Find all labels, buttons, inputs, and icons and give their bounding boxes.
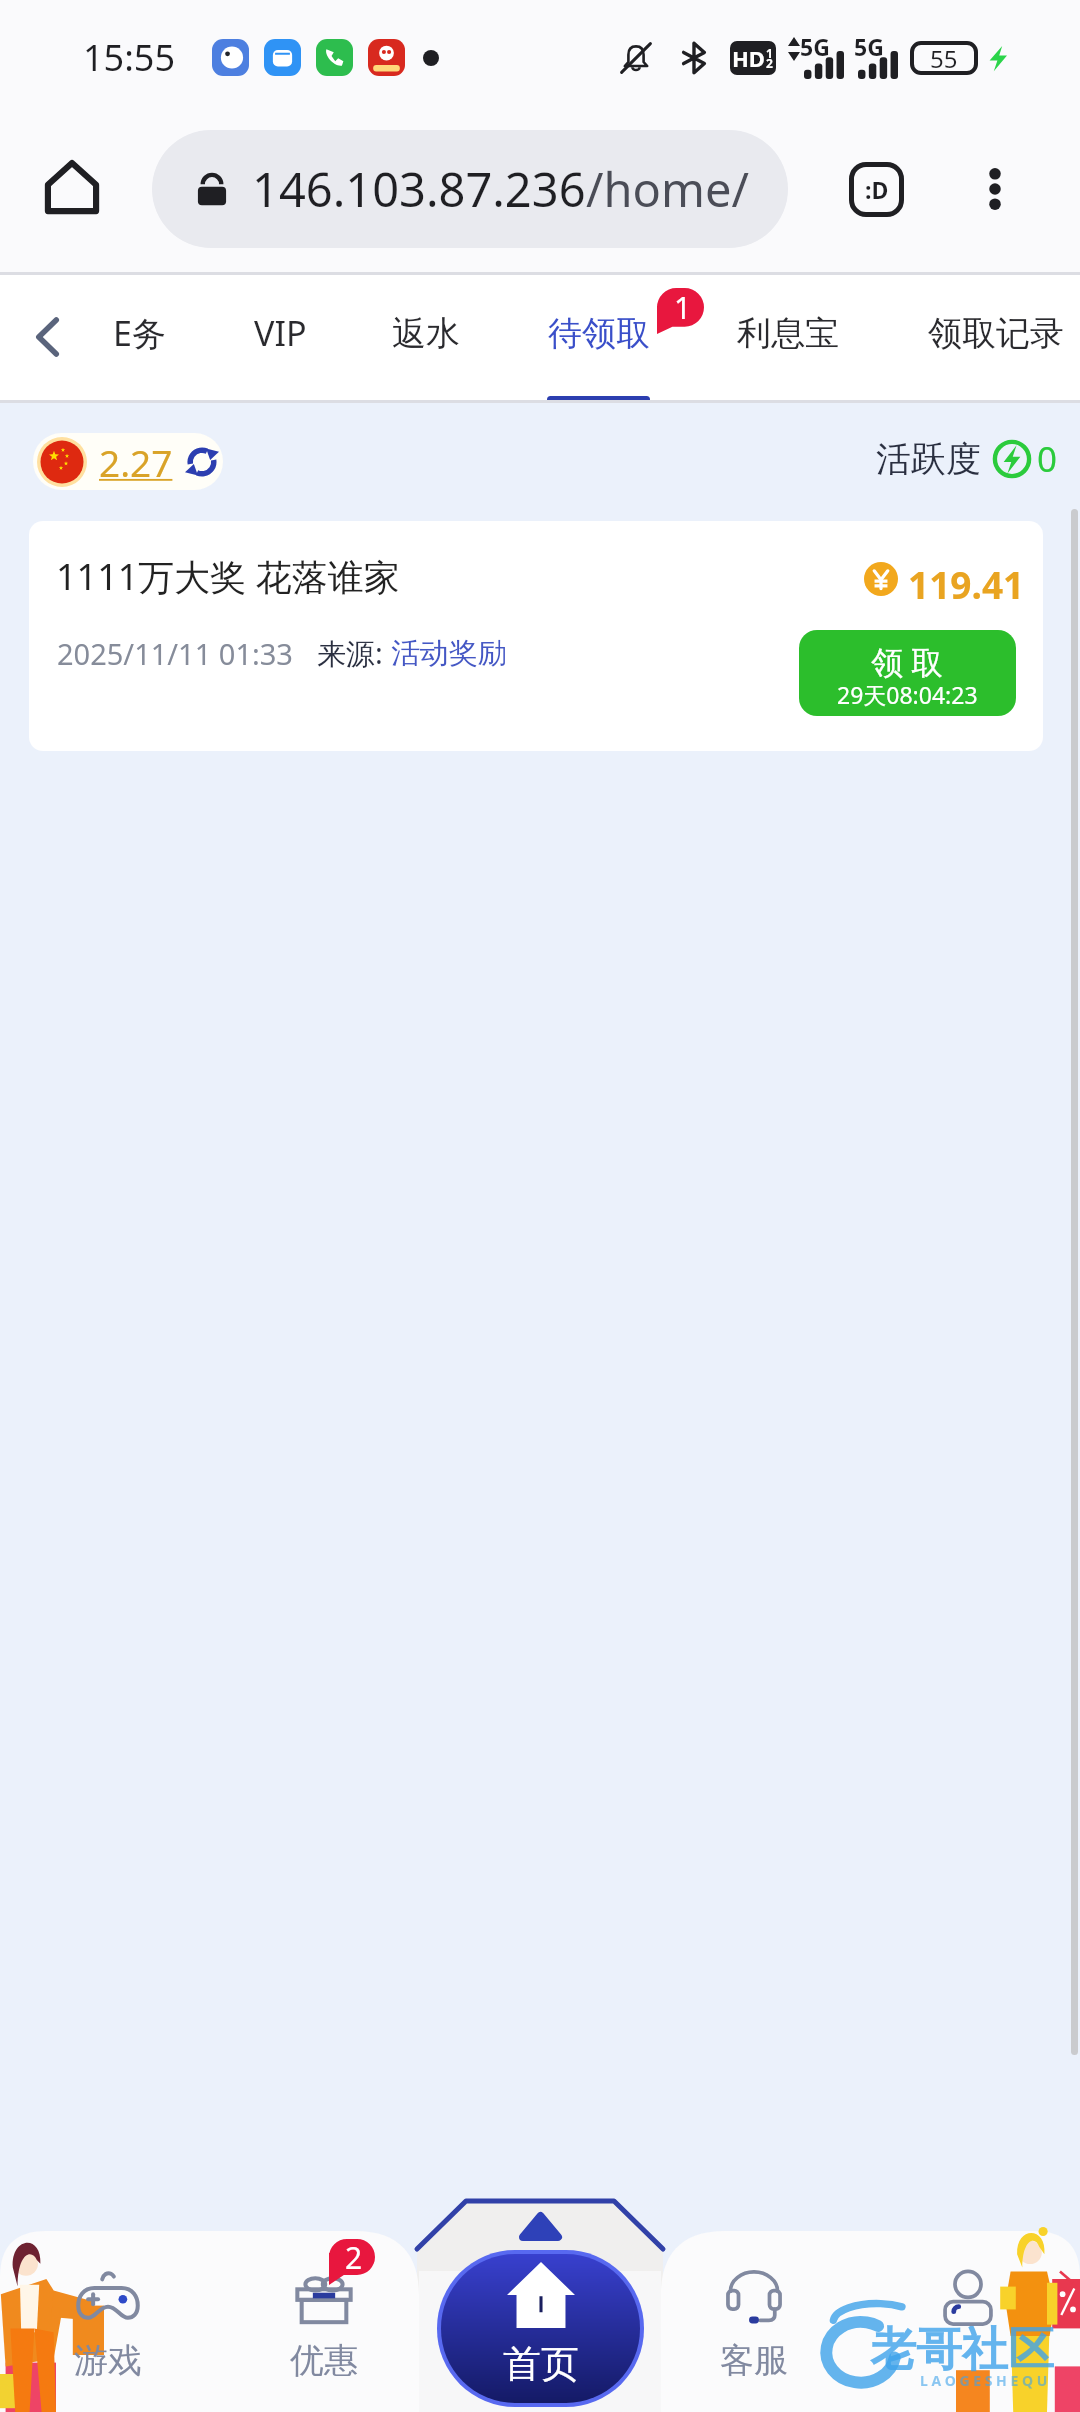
- staticText: 2025/11/11 01:33: [57, 634, 293, 673]
- staticText: 利息宝: [737, 312, 839, 355]
- button[interactable]: More options: [955, 149, 1035, 229]
- staticText: 29天08:04:23: [837, 679, 978, 710]
- button[interactable]: 1111万大奖 花落谁家: [29, 521, 1043, 751]
- button[interactable]: 游戏: [28, 2267, 188, 2397]
- staticText: :D: [865, 174, 889, 205]
- staticText: 5G: [800, 31, 830, 62]
- staticText: 老哥社区: [870, 2321, 1054, 2379]
- staticText: 119.41: [908, 559, 1025, 609]
- button[interactable]: 待领取: [524, 275, 674, 403]
- staticText: 1: [674, 287, 692, 328]
- staticText: 优惠: [290, 2339, 358, 2382]
- staticText: 客服: [720, 2339, 788, 2382]
- staticText: 领 取: [871, 640, 944, 684]
- staticText: 0: [1037, 435, 1058, 483]
- staticText: 146.103.87.236: [252, 157, 586, 221]
- staticText: 1111万大奖 花落谁家: [56, 552, 400, 601]
- button[interactable]: 首页: [441, 2254, 640, 2403]
- staticText: L A O G E S H E Q U: [920, 2371, 1048, 2390]
- button[interactable]: Tabs: [836, 149, 916, 229]
- staticText: /home/c: [586, 157, 768, 221]
- button[interactable]: 优惠: [244, 2267, 404, 2397]
- staticText: 来源:: [317, 633, 391, 673]
- staticText: 55: [930, 42, 958, 75]
- button[interactable]: Back: [10, 299, 86, 375]
- staticText: 领取记录: [928, 312, 1064, 355]
- button[interactable]: 146.103.87.236: [152, 130, 788, 248]
- staticText: E务: [113, 310, 166, 356]
- staticText: 1: [766, 45, 773, 61]
- staticText: 返水: [392, 312, 460, 355]
- staticText: 首页: [503, 2340, 579, 2388]
- button[interactable]: E务: [79, 275, 199, 403]
- staticText: 15:55: [83, 33, 176, 82]
- button[interactable]: Home: [32, 147, 112, 227]
- staticText: 5G: [854, 31, 884, 62]
- staticText: 2: [345, 2237, 363, 2278]
- button[interactable]: 领 取: [799, 630, 1016, 716]
- staticText: 活动奖励: [391, 635, 507, 672]
- other: Refresh: [185, 445, 219, 479]
- staticText: 2.27: [99, 437, 173, 487]
- staticText: 游戏: [74, 2339, 142, 2382]
- staticText: VIP: [254, 310, 307, 356]
- button[interactable]: Profile: [888, 2267, 1048, 2397]
- button[interactable]: VIP: [220, 275, 340, 403]
- button[interactable]: 领取记录: [906, 275, 1080, 403]
- staticText: HD: [732, 43, 765, 73]
- button[interactable]: 返水: [366, 275, 486, 403]
- staticText: 活跃度: [876, 437, 981, 481]
- button[interactable]: 活跃度: [876, 431, 1058, 486]
- button[interactable]: 客服: [674, 2267, 834, 2397]
- staticText: 待领取: [548, 312, 650, 355]
- staticText: 2: [766, 55, 773, 71]
- button[interactable]: 利息宝: [713, 275, 863, 403]
- button[interactable]: 2.27: [33, 433, 223, 490]
